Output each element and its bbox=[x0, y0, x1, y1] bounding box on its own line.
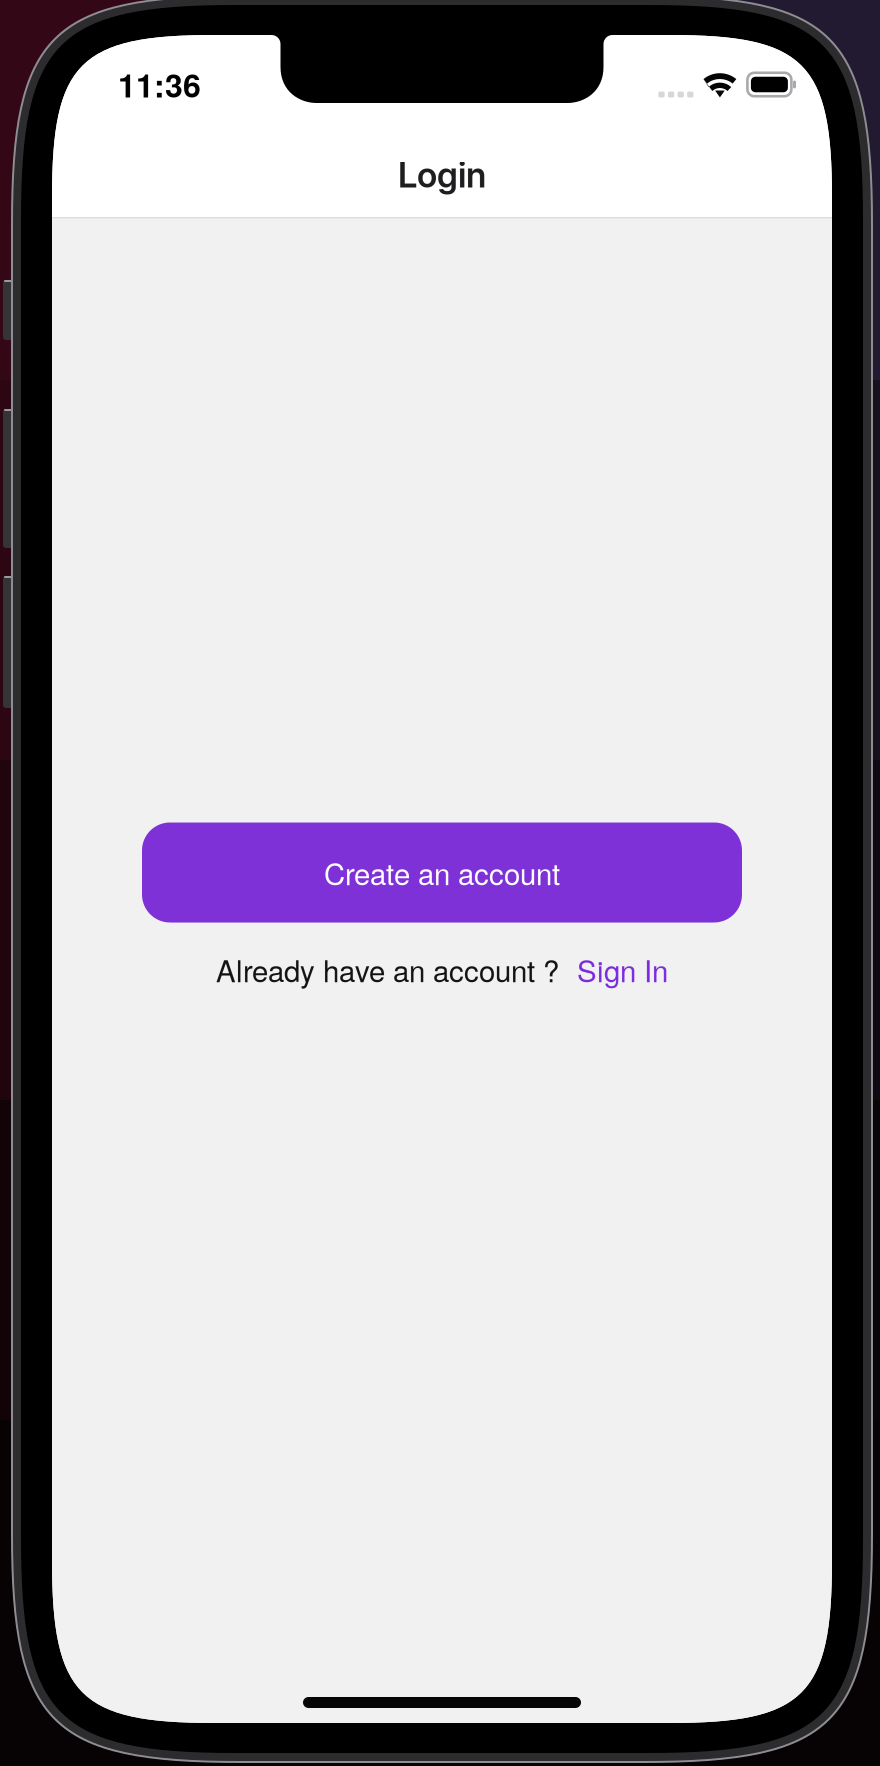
button[interactable]: Create an account bbox=[142, 822, 742, 922]
staticText: Already have an account ? bbox=[216, 948, 559, 990]
staticText: 11:36 bbox=[118, 62, 201, 107]
staticText: Create an account bbox=[324, 851, 560, 893]
staticText: Login bbox=[398, 154, 486, 196]
staticText: Sign In bbox=[577, 948, 668, 990]
button[interactable]: Sign In bbox=[577, 948, 668, 990]
